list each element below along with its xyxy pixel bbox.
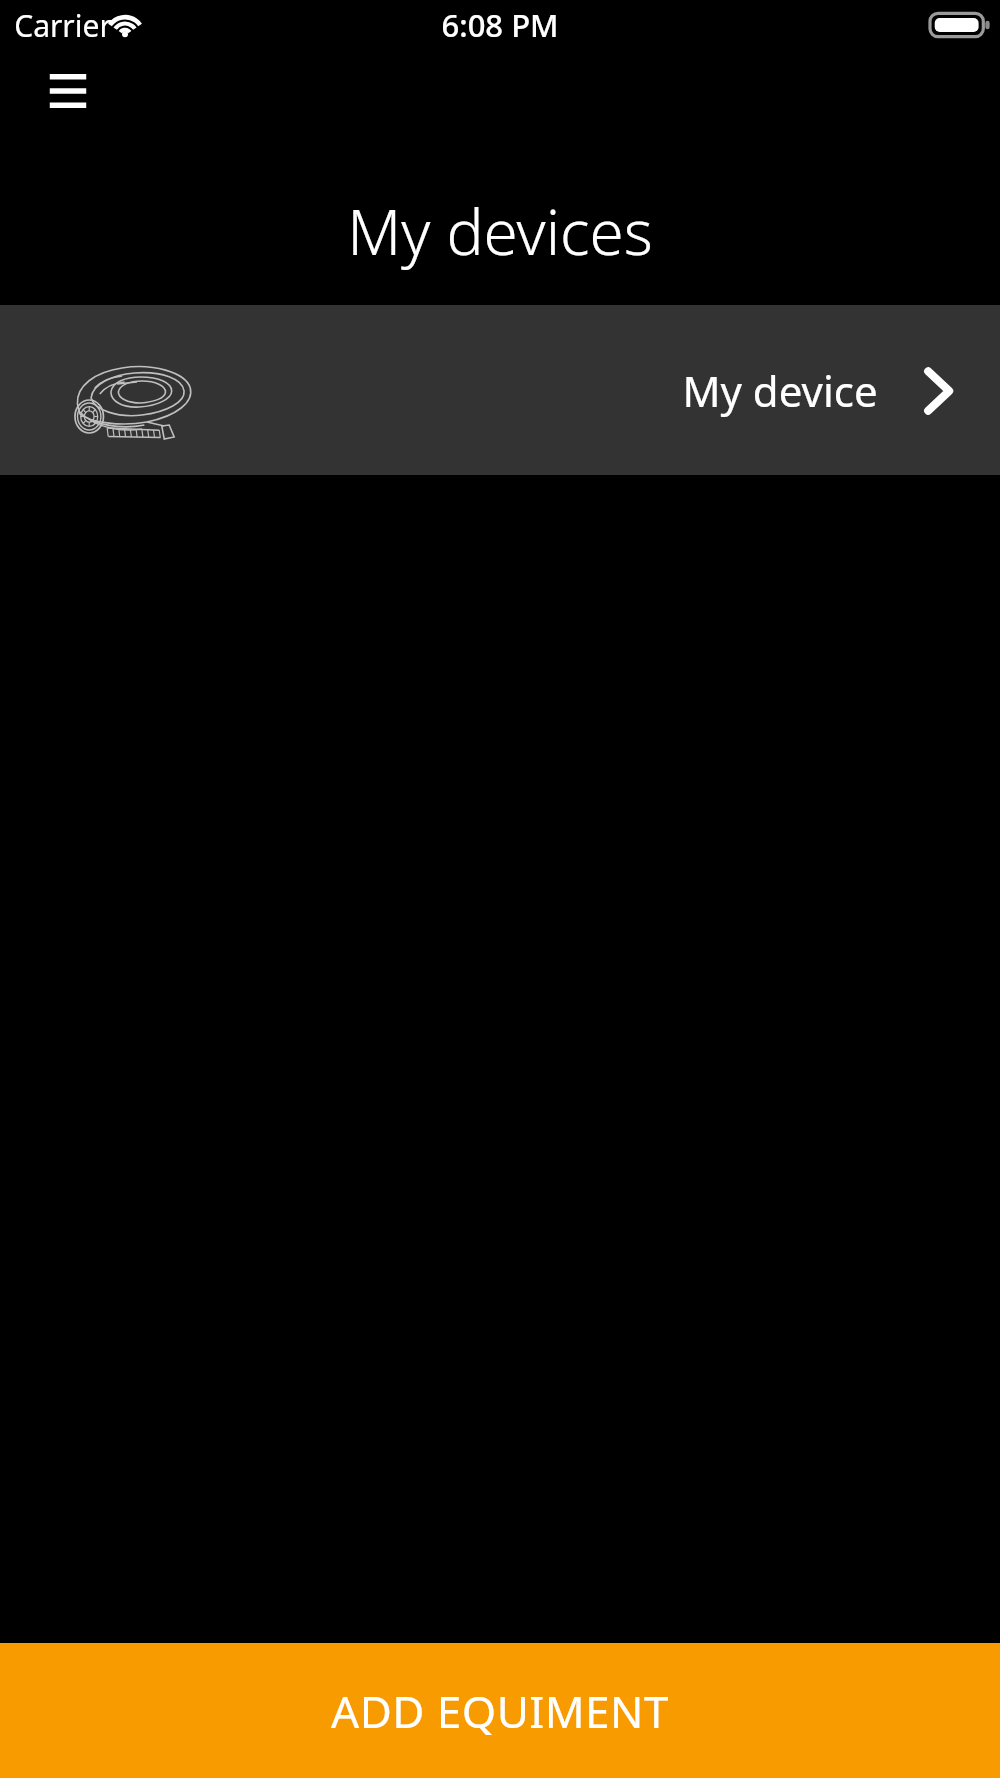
button[interactable]: Menu [30,60,106,122]
staticText: My devices [347,189,653,273]
staticText: Carrier [14,5,112,46]
staticText: My device [682,362,878,419]
staticText: 6:08 PM [441,4,559,46]
button[interactable]: My device [0,305,1000,475]
button[interactable]: ADD EQUIMENT [0,1643,1000,1778]
staticText: ADD EQUIMENT [331,1681,669,1741]
